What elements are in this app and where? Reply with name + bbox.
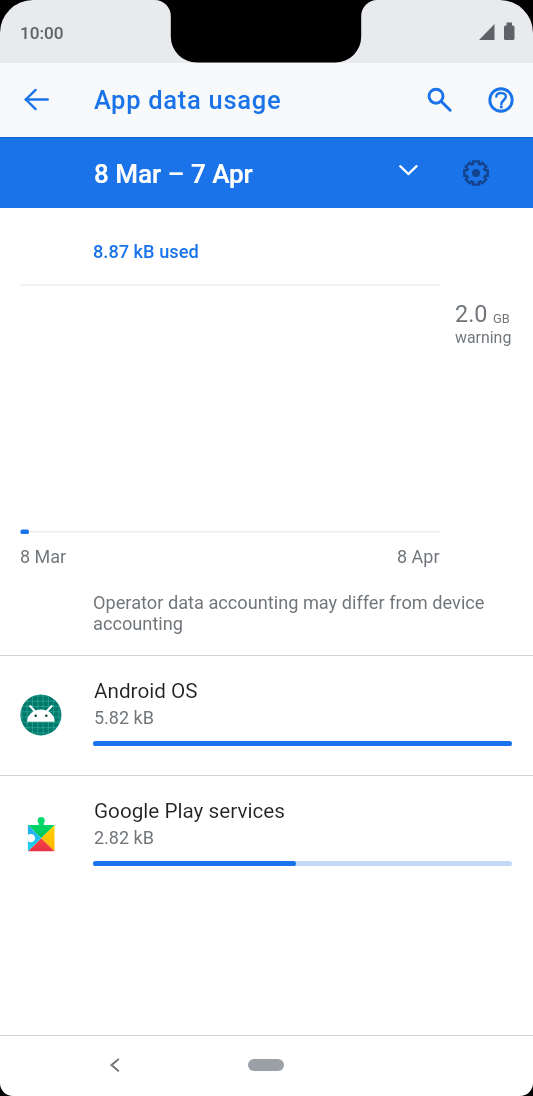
button[interactable]: Home — [248, 1059, 284, 1071]
staticText: Android OS — [94, 679, 198, 703]
button[interactable]: Back — [92, 1041, 134, 1083]
button[interactable]: Help — [477, 76, 525, 124]
staticText: 10:00 — [20, 23, 64, 43]
staticText: Operator data accounting may differ from… — [93, 592, 493, 634]
staticText: 8 Apr — [397, 546, 440, 567]
button[interactable]: Google Play services — [0, 775, 533, 895]
button[interactable]: Settings — [452, 149, 500, 197]
staticText: 8 Mar — [20, 546, 67, 567]
staticText: 8.87 kB used — [93, 241, 199, 262]
staticText: 2.82 kB — [94, 827, 154, 848]
button[interactable]: Android OS — [0, 655, 533, 775]
staticText: GB — [493, 311, 510, 326]
button[interactable]: Search — [412, 75, 460, 123]
staticText: App data usage — [94, 85, 282, 115]
staticText: Google Play services — [94, 799, 285, 823]
staticText: 8 Mar – 7 Apr — [94, 159, 253, 189]
button[interactable]: Navigate up — [12, 75, 62, 125]
staticText: 5.82 kB — [94, 707, 154, 728]
button[interactable]: 8 Mar – 7 Apr — [60, 137, 430, 208]
staticText: 2.0 — [455, 300, 488, 327]
staticText: warning — [455, 328, 512, 347]
